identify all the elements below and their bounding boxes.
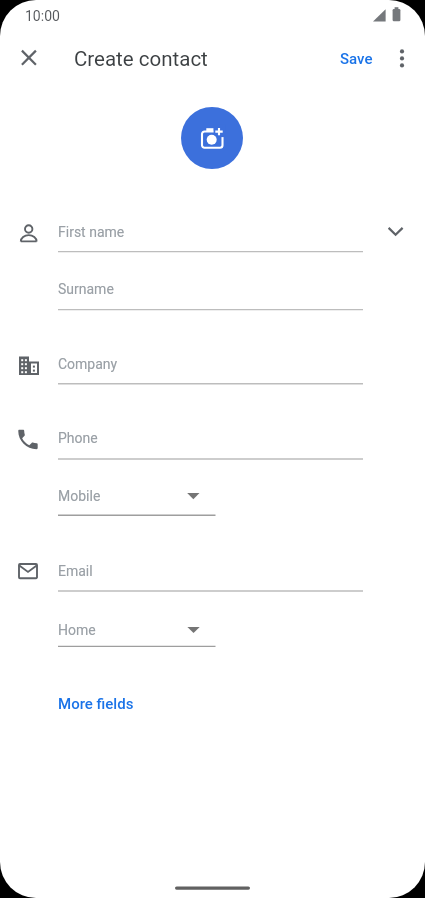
button[interactable] [57,266,363,310]
button[interactable]: Save [330,44,382,74]
button[interactable] [57,547,363,591]
button[interactable] [57,208,363,252]
button[interactable] [57,340,363,384]
staticText: Surname [58,281,114,297]
button[interactable] [14,43,44,73]
button[interactable] [57,415,363,459]
staticText: Email [58,563,93,579]
button[interactable] [57,478,215,516]
staticText: Mobile [58,488,101,504]
staticText: 10:00 [25,8,60,24]
staticText: First name [58,224,125,240]
button[interactable] [181,107,243,169]
staticText: Phone [58,430,98,446]
staticText: More fields [58,695,134,713]
button[interactable] [57,610,215,648]
button[interactable]: More fields [50,689,145,719]
staticText: Save [340,50,373,68]
staticText: Home [58,622,96,638]
button[interactable] [388,44,416,72]
staticText: Create contact [74,47,208,71]
staticText: Company [58,356,118,372]
